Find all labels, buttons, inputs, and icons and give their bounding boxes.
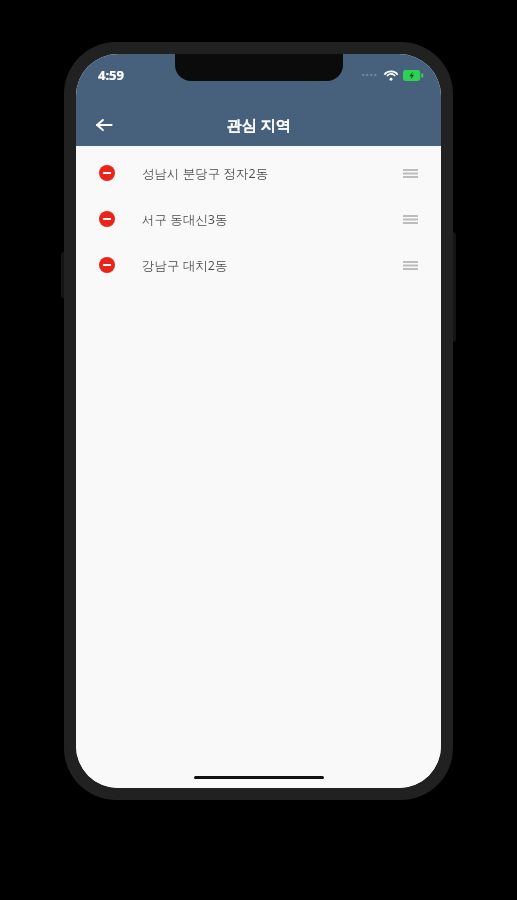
- staticText: 서구 동대신3동: [142, 211, 397, 228]
- button[interactable]: Reorder: [397, 206, 423, 232]
- button[interactable]: Remove region: [94, 252, 120, 278]
- button[interactable]: Reorder: [397, 252, 423, 278]
- button[interactable]: Remove region: [94, 206, 120, 232]
- button[interactable]: Back: [84, 105, 124, 145]
- staticText: 4:59: [98, 66, 124, 84]
- button[interactable]: Remove region: [94, 160, 120, 186]
- button[interactable]: Remove region: [76, 196, 441, 242]
- staticText: 성남시 분당구 정자2동: [142, 165, 397, 182]
- button[interactable]: Reorder: [397, 160, 423, 186]
- staticText: 관심 지역: [76, 115, 441, 135]
- staticText: 강남구 대치2동: [142, 257, 397, 274]
- button[interactable]: Remove region: [76, 150, 441, 196]
- button[interactable]: Remove region: [76, 242, 441, 288]
